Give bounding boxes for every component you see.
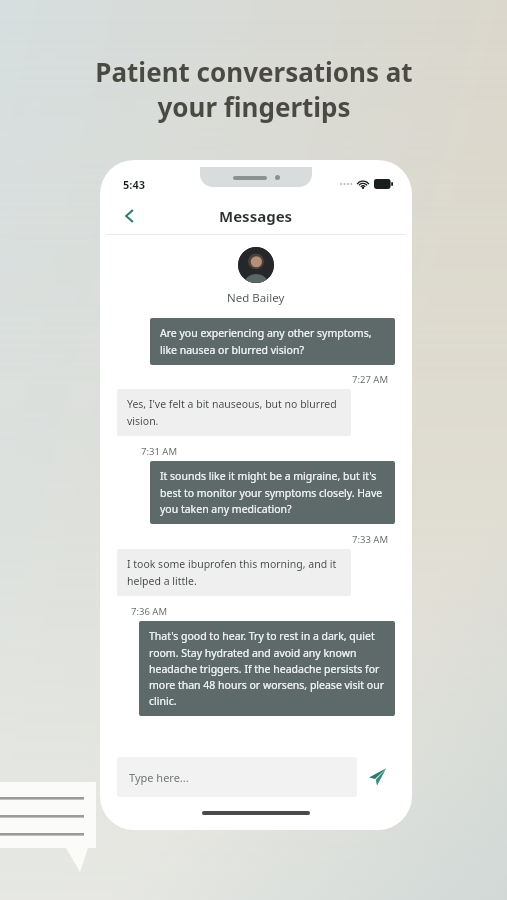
staticText: Yes, I've felt a bit nauseous, but no bl… — [127, 397, 341, 428]
staticText: Messages — [219, 206, 293, 226]
staticText: 5:43 — [123, 177, 145, 192]
button[interactable]: I took some ibuprofen this morning, and … — [117, 549, 351, 596]
button[interactable]: Ned Bailey profile photo — [238, 247, 274, 283]
staticText: That's good to hear. Try to rest in a da… — [149, 629, 385, 708]
button[interactable]: It sounds like it might be a migraine, b… — [150, 461, 395, 524]
staticText: 7:36 AM — [131, 605, 168, 618]
staticText: I took some ibuprofen this morning, and … — [127, 557, 341, 588]
staticText: 7:27 AM — [352, 373, 389, 386]
staticText: Are you experiencing any other symptoms,… — [160, 326, 385, 357]
staticText: It sounds like it might be a migraine, b… — [160, 469, 385, 516]
button[interactable]: Type here... — [117, 757, 357, 797]
staticText: Patient conversations at — [95, 54, 413, 89]
staticText: your fingertips — [157, 89, 351, 124]
staticText: 7:31 AM — [141, 445, 178, 458]
staticText: Ned Bailey — [227, 290, 285, 306]
button[interactable]: That's good to hear. Try to rest in a da… — [139, 621, 395, 716]
button[interactable]: Send — [357, 757, 397, 797]
staticText: 7:33 AM — [352, 533, 389, 546]
staticText: Type here... — [129, 770, 189, 785]
button[interactable]: Are you experiencing any other symptoms,… — [150, 318, 395, 365]
button[interactable]: Yes, I've felt a bit nauseous, but no bl… — [117, 389, 351, 436]
button[interactable]: Back — [113, 199, 147, 233]
